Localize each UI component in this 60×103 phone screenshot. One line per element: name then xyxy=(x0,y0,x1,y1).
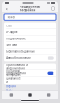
button[interactable]: Политика конфиденциальности xyxy=(4,77,56,84)
button[interactable]: Раздел xyxy=(39,91,58,99)
button[interactable]: IP-адрес xyxy=(4,29,56,35)
staticText: Автообновление xyxy=(6,56,30,60)
staticText: Безопасность данных xyxy=(6,50,34,53)
staticText: Поиск xyxy=(6,15,14,19)
staticText: Уведомления xyxy=(6,71,26,75)
button[interactable]: Сеть xyxy=(4,22,56,29)
staticText: Сеть xyxy=(6,24,11,27)
staticText: Подключение xyxy=(6,37,25,40)
staticText: Расширенные настройки xyxy=(19,5,40,12)
button[interactable]: Автообновление xyxy=(4,55,56,61)
button[interactable]: Тип сети xyxy=(4,42,56,48)
button[interactable]: Уведомления xyxy=(4,70,56,77)
button[interactable]: Меню xyxy=(50,5,56,11)
staticText: Тип сети xyxy=(6,43,17,47)
staticText: Политика конфиденциальности xyxy=(6,69,21,84)
staticText: IP-адрес xyxy=(6,30,17,34)
button[interactable]: Безопасность данных xyxy=(4,48,56,54)
staticText: ‹ xyxy=(6,5,8,12)
button[interactable]: Подключение xyxy=(4,35,56,42)
button[interactable]: Раздел xyxy=(2,91,21,99)
staticText: Приложения и уведомления xyxy=(6,63,28,70)
button[interactable]: Настройки xyxy=(21,91,39,99)
button[interactable]: Back xyxy=(4,5,10,11)
staticText: Версия 4.2.1 xyxy=(6,84,16,92)
button[interactable]: Приложения и уведомления xyxy=(4,63,56,70)
